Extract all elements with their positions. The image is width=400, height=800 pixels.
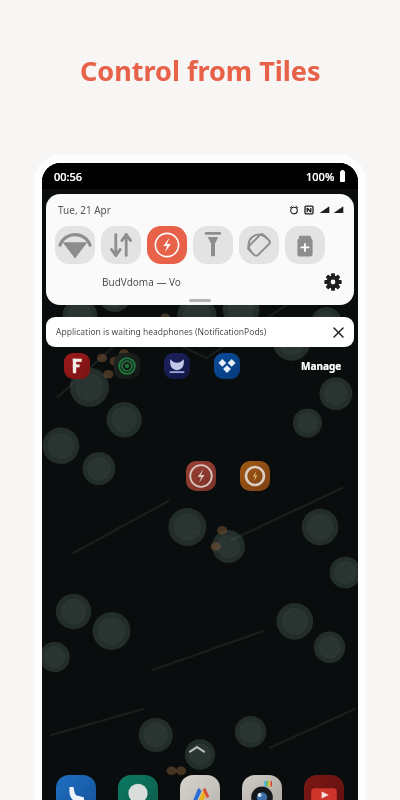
button[interactable]: Tracker (114, 353, 140, 379)
staticText: Tue, 21 Apr (58, 203, 111, 217)
button[interactable]: Flash alert shortcut (186, 461, 216, 491)
button[interactable]: UA Fitness (164, 353, 190, 379)
staticText: Control from Tiles (80, 52, 321, 89)
button[interactable]: Flashlight shortcut (240, 461, 270, 491)
button[interactable]: Dropbox (214, 353, 240, 379)
staticText: 00:56 (54, 169, 83, 184)
button[interactable]: Camera (242, 775, 282, 800)
staticText: Application is waiting headphones (Notif… (56, 326, 267, 338)
button[interactable]: Mobile data (101, 226, 141, 264)
button[interactable]: Phone (56, 775, 96, 800)
button[interactable]: Messages (118, 775, 158, 800)
button[interactable]: Auto rotate (239, 226, 279, 264)
button[interactable]: Settings (324, 273, 342, 291)
button[interactable]: Flash alert (147, 226, 187, 264)
button[interactable]: Battery saver (285, 226, 325, 264)
staticText: 100% (306, 169, 335, 184)
staticText: Manage (301, 359, 342, 373)
button[interactable]: Play Store (180, 775, 220, 800)
button[interactable]: Dismiss (330, 324, 346, 340)
button[interactable]: Flashlight (193, 226, 233, 264)
button[interactable]: Wi-Fi (55, 226, 95, 264)
button[interactable]: YouTube (304, 775, 344, 800)
button[interactable]: Manage (299, 357, 344, 375)
staticText: BudVdoma — Vo (102, 275, 181, 289)
button[interactable]: Application is waiting headphones (Notif… (46, 317, 354, 347)
button[interactable]: Foodly (64, 353, 90, 379)
